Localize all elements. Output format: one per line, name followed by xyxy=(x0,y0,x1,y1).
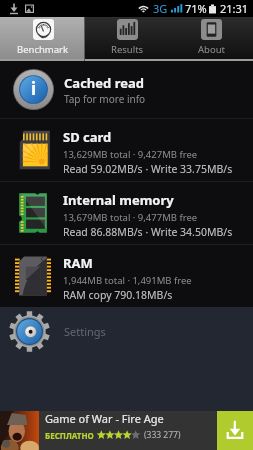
staticText: 21:31 xyxy=(220,1,249,16)
button[interactable]: Internal memory xyxy=(0,182,253,244)
button[interactable]: RAM xyxy=(0,245,253,307)
staticText: Results xyxy=(111,43,144,56)
staticText: 71% xyxy=(185,1,207,16)
staticText: (333 277) xyxy=(144,429,181,441)
staticText: Benchmark xyxy=(17,43,69,56)
button[interactable]: Benchmark xyxy=(0,17,85,61)
staticText: Cached read xyxy=(64,74,144,92)
button[interactable]: About xyxy=(169,17,253,61)
button[interactable]: i xyxy=(0,61,253,118)
staticText: RAM copy 790.18MB/s xyxy=(63,288,173,302)
staticText: About xyxy=(198,43,225,56)
button[interactable]: Game of War - Fire Age xyxy=(0,411,253,450)
staticText: Read 86.88MB/s · Write 34.50MB/s xyxy=(63,225,233,239)
staticText: SD card xyxy=(63,128,112,146)
staticText: БЕСПЛАТНО xyxy=(45,430,94,441)
button[interactable]: Settings xyxy=(0,307,253,355)
button[interactable]: SD card xyxy=(0,119,253,181)
staticText: Settings xyxy=(64,324,106,339)
staticText: 13,679MB total · 9,477MB free xyxy=(63,211,198,224)
staticText: 1,944MB total · 1,491MB free xyxy=(63,274,192,287)
staticText: Tap for more info xyxy=(64,92,146,106)
button[interactable]: Results xyxy=(85,17,169,61)
button[interactable]: Install xyxy=(217,411,253,450)
staticText: 3G xyxy=(153,1,168,16)
staticText: i xyxy=(31,77,37,100)
staticText: RAM xyxy=(63,254,93,272)
staticText: 13,629MB total · 9,427MB free xyxy=(63,148,198,161)
staticText: Read 59.02MB/s · Write 33.75MB/s xyxy=(63,162,233,176)
staticText: Game of War - Fire Age xyxy=(45,411,164,426)
staticText: Internal memory xyxy=(63,191,174,209)
